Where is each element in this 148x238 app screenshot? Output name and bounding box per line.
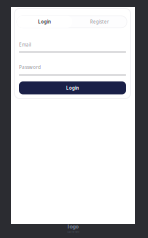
button[interactable]: Login	[17, 16, 72, 28]
staticText: tagline here	[67, 230, 79, 233]
staticText: Register	[90, 19, 109, 25]
staticText: Email	[19, 42, 31, 48]
button[interactable]: Register	[72, 16, 127, 28]
staticText: Password	[19, 64, 41, 70]
staticText: Login	[38, 19, 51, 25]
staticText: Login	[66, 85, 79, 91]
staticText: logo	[67, 223, 78, 230]
button[interactable]: Login	[19, 81, 126, 94]
